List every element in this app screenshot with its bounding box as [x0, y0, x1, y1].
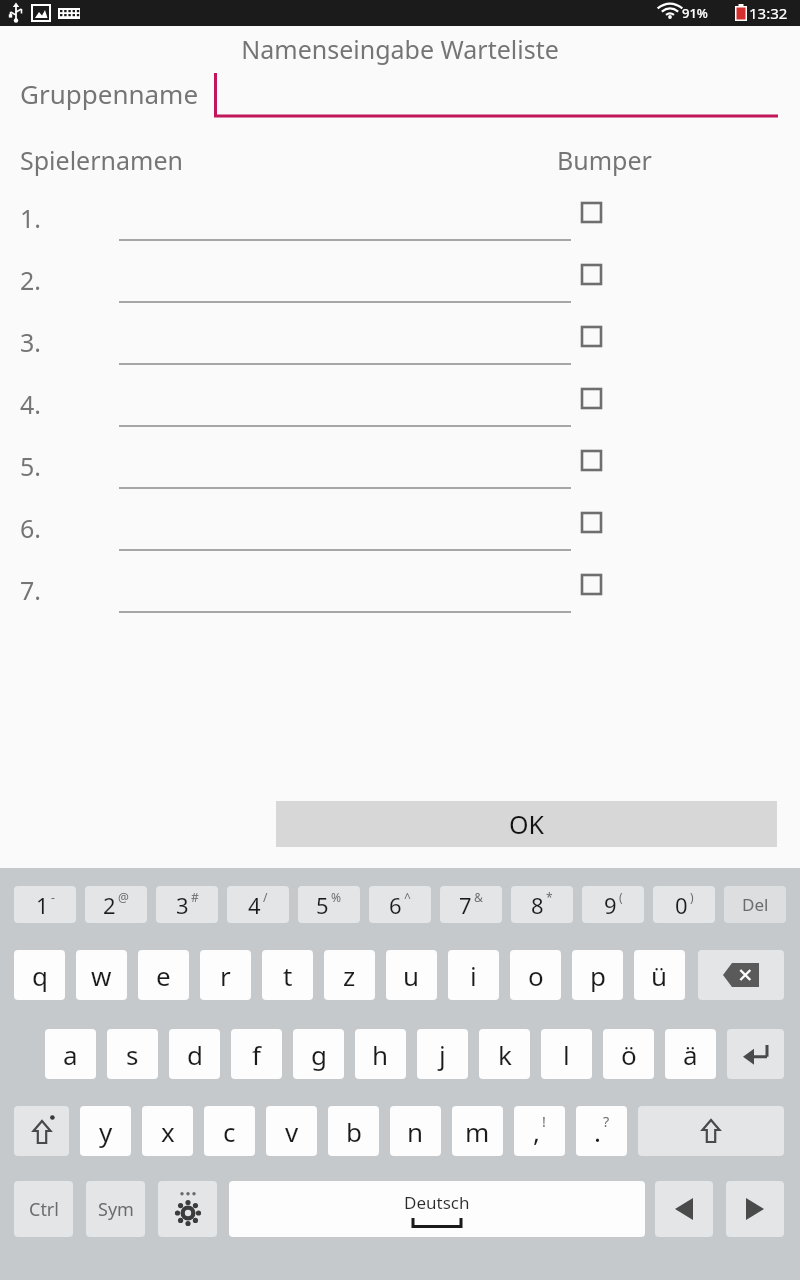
button[interactable]: Cursor right [726, 1181, 784, 1237]
button[interactable]: ö [603, 1029, 654, 1079]
button[interactable]: r [200, 950, 251, 1000]
button[interactable]: 3 [156, 886, 218, 923]
button[interactable]: Bumper 5 [571, 440, 611, 480]
button[interactable]: m [452, 1106, 503, 1156]
button[interactable]: Del [724, 886, 786, 923]
button[interactable]: i [448, 950, 499, 1000]
staticText: ) [690, 889, 694, 905]
staticText: * [546, 889, 553, 905]
button[interactable]: Bumper 1 [571, 192, 611, 232]
button[interactable]: t [262, 950, 313, 1000]
button[interactable]: y [80, 1106, 131, 1156]
button[interactable]: j [417, 1029, 468, 1079]
button[interactable]: 4 [227, 886, 289, 923]
button[interactable]: h [355, 1029, 406, 1079]
staticText: u [403, 958, 420, 993]
button[interactable] [119, 445, 571, 489]
staticText: s [126, 1037, 139, 1072]
button[interactable]: Enter [727, 1029, 784, 1079]
button[interactable]: Deutsch [229, 1181, 645, 1237]
button[interactable] [119, 507, 571, 551]
button[interactable]: c [204, 1106, 255, 1156]
staticText: 91% [682, 4, 708, 22]
button[interactable]: n [390, 1106, 441, 1156]
button[interactable]: , [514, 1106, 565, 1156]
button[interactable]: Bumper 6 [571, 502, 611, 542]
button[interactable]: 8 [511, 886, 573, 923]
button[interactable]: OK [276, 801, 777, 847]
button[interactable]: 6 [369, 886, 431, 923]
button[interactable]: p [572, 950, 623, 1000]
button[interactable]: Ctrl [14, 1181, 73, 1237]
button[interactable]: ä [665, 1029, 716, 1079]
button[interactable]: x [142, 1106, 193, 1156]
staticText: 7. [20, 573, 42, 607]
staticText: m [465, 1114, 490, 1149]
staticText: q [32, 958, 48, 993]
staticText: y [99, 1114, 113, 1149]
button[interactable]: 7 [440, 886, 502, 923]
staticText: 6. [20, 511, 42, 545]
button[interactable]: u [386, 950, 437, 1000]
button[interactable]: f [231, 1029, 282, 1079]
button[interactable] [214, 73, 778, 119]
staticText: 1. [20, 201, 42, 235]
staticText: Bumper [557, 143, 652, 177]
staticText: 5 [316, 890, 329, 920]
button[interactable]: k [479, 1029, 530, 1079]
staticText: n [407, 1114, 424, 1149]
button[interactable]: b [328, 1106, 379, 1156]
button[interactable]: Backspace [698, 950, 784, 1000]
staticText: f [252, 1037, 261, 1072]
staticText: ? [603, 1112, 610, 1131]
button[interactable]: Bumper 4 [571, 378, 611, 418]
button[interactable]: 1 [14, 886, 76, 923]
staticText: 5. [20, 449, 42, 483]
button[interactable]: Bumper 3 [571, 316, 611, 356]
button[interactable]: Shift [14, 1106, 69, 1156]
button[interactable] [119, 569, 571, 613]
button[interactable] [119, 259, 571, 303]
button[interactable]: 9 [582, 886, 644, 923]
staticText: % [331, 889, 342, 905]
button[interactable]: ü [634, 950, 685, 1000]
staticText: Ctrl [29, 1197, 59, 1222]
staticText: 7 [459, 890, 472, 920]
staticText: ^ [404, 889, 411, 905]
button[interactable]: . [576, 1106, 627, 1156]
staticText: p [590, 958, 606, 993]
button[interactable]: d [169, 1029, 220, 1079]
button[interactable] [119, 321, 571, 365]
button[interactable]: s [107, 1029, 158, 1079]
staticText: o [528, 958, 544, 993]
button[interactable]: z [324, 950, 375, 1000]
button[interactable]: g [293, 1029, 344, 1079]
staticText: 8 [531, 890, 544, 920]
staticText: t [283, 958, 293, 993]
button[interactable]: Settings [158, 1181, 217, 1237]
button[interactable]: Sym [86, 1181, 145, 1237]
staticText: 6 [389, 890, 402, 920]
button[interactable]: l [541, 1029, 592, 1079]
button[interactable]: q [14, 950, 65, 1000]
button[interactable]: Bumper 7 [571, 564, 611, 604]
button[interactable] [119, 197, 571, 241]
staticText: / [263, 889, 268, 905]
button[interactable]: w [76, 950, 127, 1000]
button[interactable]: a [45, 1029, 96, 1079]
button[interactable]: 5 [298, 886, 360, 923]
button[interactable]: 0 [653, 886, 715, 923]
button[interactable]: Cursor left [655, 1181, 713, 1237]
button[interactable]: e [138, 950, 189, 1000]
button[interactable]: o [510, 950, 561, 1000]
button[interactable]: 2 [85, 886, 147, 923]
staticText: e [156, 958, 171, 993]
button[interactable]: v [266, 1106, 317, 1156]
staticText: a [63, 1037, 78, 1072]
button[interactable]: Shift [638, 1106, 784, 1156]
staticText: d [187, 1037, 203, 1072]
staticText: l [563, 1037, 570, 1072]
button[interactable]: Bumper 2 [571, 254, 611, 294]
staticText: , [533, 1114, 540, 1149]
button[interactable] [119, 383, 571, 427]
